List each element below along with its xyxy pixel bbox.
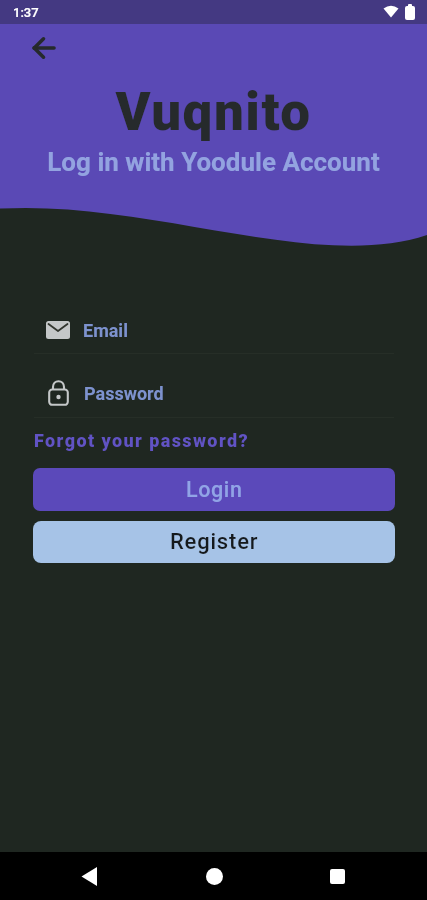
button[interactable] <box>313 852 361 900</box>
staticText: Password <box>84 383 164 404</box>
button[interactable]: Password <box>34 373 394 413</box>
button[interactable]: Register <box>33 521 395 563</box>
staticText: Log in with Yoodule Account <box>0 147 427 177</box>
staticText: Login <box>186 477 243 502</box>
staticText: Email <box>83 320 128 341</box>
button[interactable]: Email <box>34 310 394 350</box>
staticText: Vuqnito <box>0 81 427 143</box>
button[interactable] <box>190 852 238 900</box>
button[interactable]: Login <box>33 468 395 511</box>
button[interactable] <box>65 852 113 900</box>
button[interactable]: Forgot your password? <box>34 430 250 451</box>
staticText: Register <box>170 529 259 555</box>
staticText: 1:37 <box>13 5 39 20</box>
button[interactable] <box>24 28 64 68</box>
